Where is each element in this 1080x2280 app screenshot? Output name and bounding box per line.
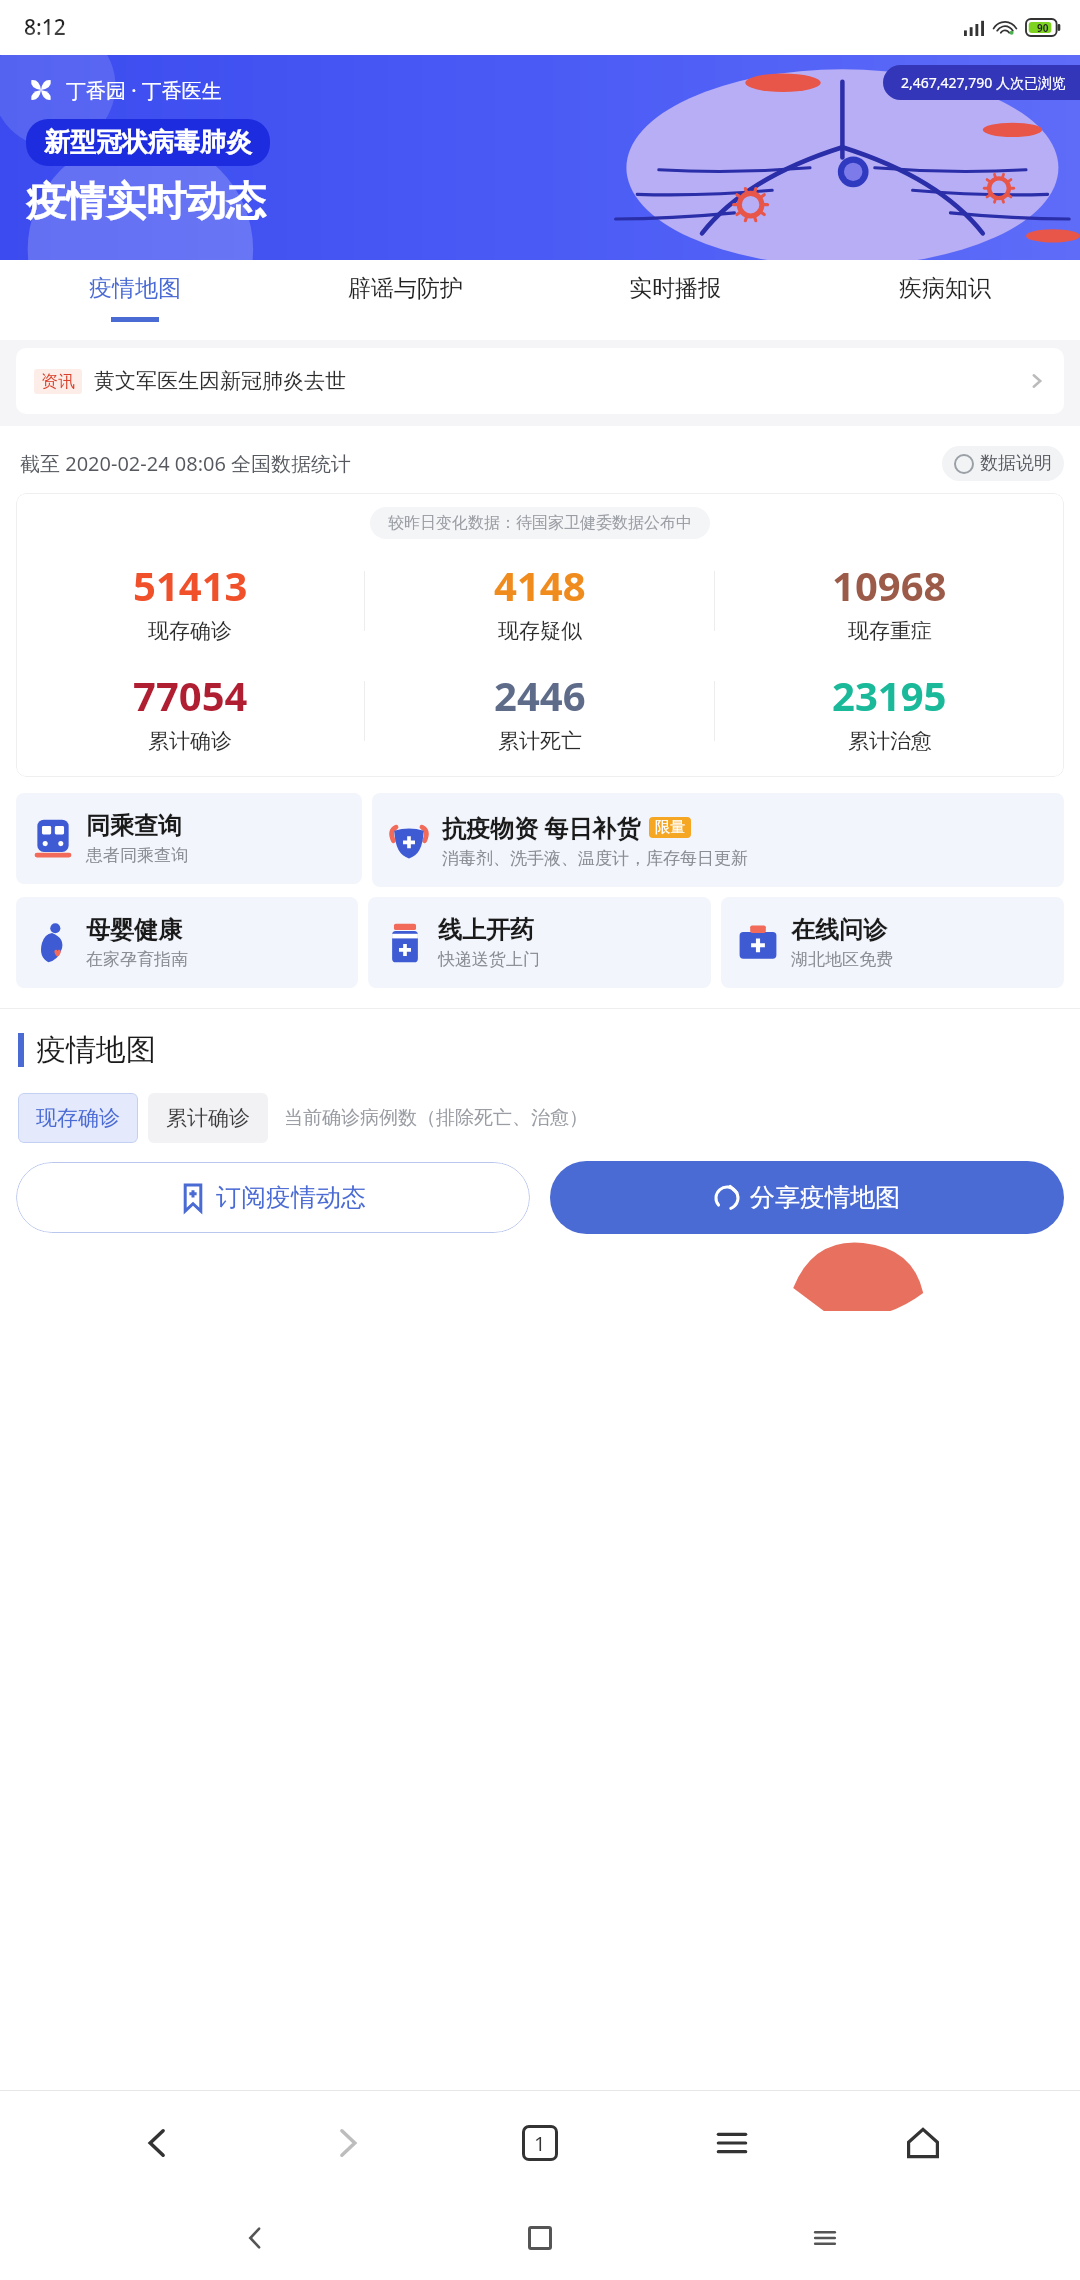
staticText: 消毒剂、洗手液、温度计，库存每日更新 <box>442 848 748 869</box>
button[interactable]: 辟谣与防护 <box>270 260 540 340</box>
button[interactable]: 资讯 <box>16 348 1064 414</box>
button[interactable]: 累计确诊 <box>148 1093 268 1143</box>
button[interactable]: Home <box>888 2108 958 2178</box>
staticText: 10968 <box>832 558 947 612</box>
staticText: 限量 <box>655 818 685 837</box>
staticText: 在家孕育指南 <box>86 949 188 970</box>
staticText: 累计确诊 <box>166 1105 250 1131</box>
staticText: 实时播报 <box>629 274 721 303</box>
button[interactable]: 实时播报 <box>540 260 810 340</box>
staticText: 较昨日变化数据：待国家卫健委数据公布中 <box>388 513 692 533</box>
staticText: 截至 2020-02-24 08:06 全国数据统计 <box>20 450 352 477</box>
staticText: 2,467,427,790 人次已浏览 <box>901 73 1066 92</box>
button[interactable]: 2,467,427,790 人次已浏览 <box>901 73 1066 92</box>
staticText: 母婴健康 <box>86 915 182 945</box>
staticText: 现存确诊 <box>148 618 232 644</box>
staticText: 疾病知识 <box>899 274 991 303</box>
staticText: 线上开药 <box>438 915 534 945</box>
staticText: 湖北地区免费 <box>791 949 893 970</box>
button[interactable]: 分享疫情地图 <box>550 1161 1064 1234</box>
staticText: 1 <box>534 2130 546 2157</box>
staticText: 累计确诊 <box>148 728 232 754</box>
staticText: 在线问诊 <box>791 915 887 945</box>
staticText: 51413 <box>133 558 248 612</box>
staticText: 丁香园 · 丁香医生 <box>66 77 222 104</box>
button[interactable]: 数据说明 <box>942 446 1064 481</box>
staticText: 累计治愈 <box>848 728 932 754</box>
button[interactable]: Menu <box>697 2108 767 2178</box>
staticText: 累计死亡 <box>498 728 582 754</box>
staticText: 2446 <box>494 668 586 722</box>
staticText: 分享疫情地图 <box>750 1182 900 1213</box>
staticText: 订阅疫情动态 <box>216 1182 366 1213</box>
button[interactable]: 母婴健康 <box>16 897 358 988</box>
button[interactable]: 订阅疫情动态 <box>16 1162 530 1233</box>
button[interactable]: Home <box>510 2208 570 2268</box>
button[interactable]: Back <box>122 2108 192 2178</box>
staticText: 8:12 <box>24 13 66 42</box>
button[interactable]: 现存确诊 <box>18 1093 138 1143</box>
staticText: 新型冠状病毒肺炎 <box>44 126 252 159</box>
staticText: 资讯 <box>41 371 75 392</box>
staticText: 现存疑似 <box>498 618 582 644</box>
staticText: 黄文军医生因新冠肺炎去世 <box>94 368 1028 394</box>
staticText: 77054 <box>133 668 248 722</box>
button[interactable]: 同乘查询 <box>16 793 362 884</box>
staticText: 当前确诊病例数（排除死亡、治愈） <box>284 1106 588 1130</box>
button[interactable]: Forward <box>313 2108 383 2178</box>
button[interactable]: 在线问诊 <box>721 897 1064 988</box>
staticText: 23195 <box>832 668 947 722</box>
staticText: 抗疫物资 每日补货 <box>442 811 641 844</box>
button[interactable]: 线上开药 <box>368 897 711 988</box>
staticText: 快递送货上门 <box>438 949 540 970</box>
staticText: 疫情地图 <box>89 274 181 303</box>
staticText: 疫情地图 <box>36 1031 156 1069</box>
staticText: 患者同乘查询 <box>86 845 188 866</box>
staticText: 同乘查询 <box>86 811 182 841</box>
staticText: 现存重症 <box>848 618 932 644</box>
button[interactable]: 疾病知识 <box>810 260 1080 340</box>
staticText: 辟谣与防护 <box>348 274 463 303</box>
staticText: 现存确诊 <box>36 1105 120 1131</box>
button[interactable]: Tabs <box>505 2108 575 2178</box>
button[interactable]: Back <box>225 2208 285 2268</box>
staticText: 数据说明 <box>980 452 1052 475</box>
button[interactable]: Recents <box>795 2208 855 2268</box>
staticText: 4148 <box>494 558 586 612</box>
button[interactable]: 疫情地图 <box>0 260 270 340</box>
button[interactable]: 抗疫物资 每日补货 <box>372 793 1064 887</box>
staticText: 疫情实时动态 <box>26 176 266 226</box>
staticText: 90 <box>1037 21 1049 35</box>
